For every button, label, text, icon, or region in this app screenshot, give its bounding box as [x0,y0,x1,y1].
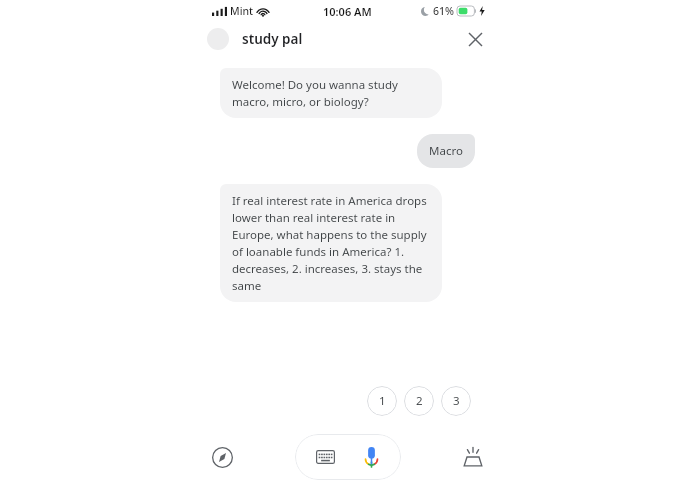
button[interactable]: 1 [367,386,397,416]
staticText: Mint [230,4,254,18]
button[interactable]: Profile [207,28,229,50]
button[interactable]: Keyboard [310,442,340,472]
staticText: 1 [379,393,386,409]
button[interactable]: Welcome! Do you wanna study macro, micro… [220,68,442,118]
button[interactable]: 3 [441,386,471,416]
staticText: 2 [416,393,423,409]
staticText: 3 [453,393,460,409]
staticText: 61% [433,4,454,18]
staticText: Macro [429,143,463,159]
button[interactable]: 2 [404,386,434,416]
staticText: 10:06 AM [323,4,372,19]
button[interactable]: Voice input [356,442,386,472]
staticText: If real interest rate in America drops l… [232,193,430,293]
button[interactable]: If real interest rate in America drops l… [220,184,442,302]
staticText: study pal [242,30,303,48]
button[interactable]: Keyboard [295,434,401,480]
button[interactable]: Explore [205,440,239,474]
staticText: Welcome! Do you wanna study macro, micro… [232,77,430,109]
button[interactable]: Close [462,26,488,52]
button[interactable]: Macro [417,134,475,168]
button[interactable]: Hide keyboard [456,440,490,474]
